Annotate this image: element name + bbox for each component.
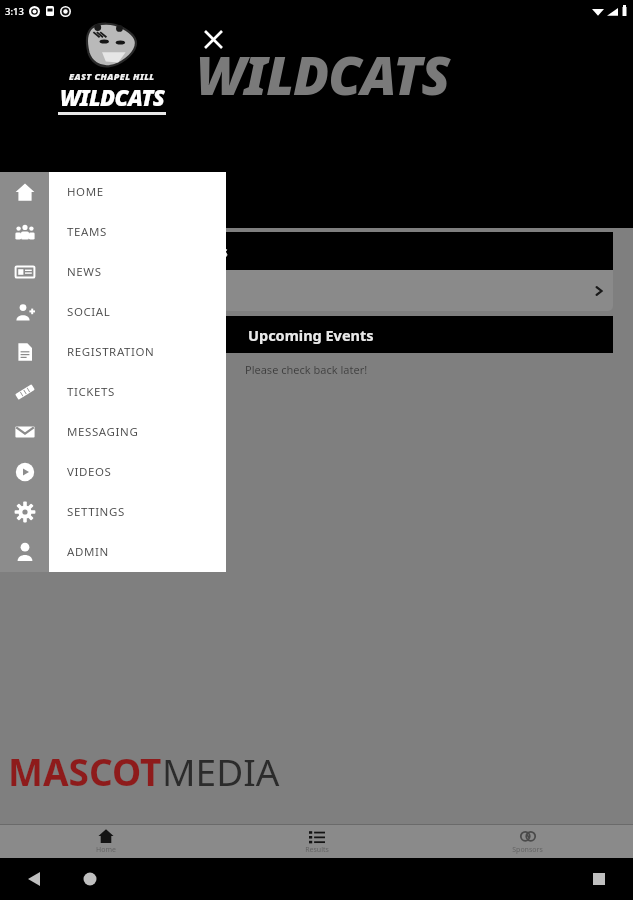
button[interactable]: TICKETS bbox=[49, 372, 226, 412]
staticText: WILDCATS bbox=[196, 38, 450, 110]
button[interactable]: SETTINGS bbox=[49, 492, 226, 532]
staticText: MEDIA bbox=[162, 746, 280, 796]
button[interactable]: SOCIAL bbox=[49, 292, 226, 332]
staticText: HUB Alerts, Announcements, and Forms bbox=[15, 283, 223, 298]
staticText: SOCIAL bbox=[67, 304, 111, 320]
staticText: SETTINGS bbox=[67, 504, 125, 520]
button[interactable]: Close menu bbox=[197, 23, 229, 55]
staticText: Upcoming Events bbox=[248, 325, 374, 345]
staticText: Please check back later! bbox=[245, 362, 368, 377]
staticText: HOME bbox=[67, 184, 104, 200]
button[interactable]: Results bbox=[211, 825, 422, 858]
staticText: EAST CHAPEL HILL bbox=[69, 70, 155, 82]
staticText: Home bbox=[96, 845, 116, 855]
button[interactable]: Upcoming Events bbox=[8, 316, 613, 353]
staticText: WILDCATS bbox=[60, 82, 165, 112]
staticText: MASCOT bbox=[8, 746, 162, 796]
button[interactable]: Home bbox=[0, 825, 211, 858]
button[interactable]: VIDEOS bbox=[49, 452, 226, 492]
button[interactable]: REGISTRATION bbox=[49, 332, 226, 372]
staticText: 3:13 bbox=[5, 5, 24, 18]
button[interactable]: HOME bbox=[49, 172, 226, 212]
button[interactable]: HUB Alerts, Announcements, and Forms bbox=[8, 270, 613, 311]
button[interactable]: MESSAGING bbox=[49, 412, 226, 452]
staticText: Important Announcements bbox=[30, 241, 228, 261]
staticText: TEAMS bbox=[67, 224, 107, 240]
button[interactable]: Sponsors bbox=[422, 825, 633, 858]
staticText: NEWS bbox=[67, 264, 102, 280]
staticText: ADMIN bbox=[67, 544, 109, 560]
button[interactable]: NEWS bbox=[49, 252, 226, 292]
button[interactable]: Important Announcements bbox=[8, 232, 613, 270]
staticText: REGISTRATION bbox=[67, 344, 155, 360]
staticText: MESSAGING bbox=[67, 424, 139, 440]
staticText: Results bbox=[305, 845, 329, 855]
staticText: TICKETS bbox=[67, 384, 115, 400]
staticText: Sponsors bbox=[512, 845, 543, 855]
button[interactable]: ADMIN bbox=[49, 532, 226, 572]
button[interactable]: TEAMS bbox=[49, 212, 226, 252]
staticText: VIDEOS bbox=[67, 464, 112, 480]
